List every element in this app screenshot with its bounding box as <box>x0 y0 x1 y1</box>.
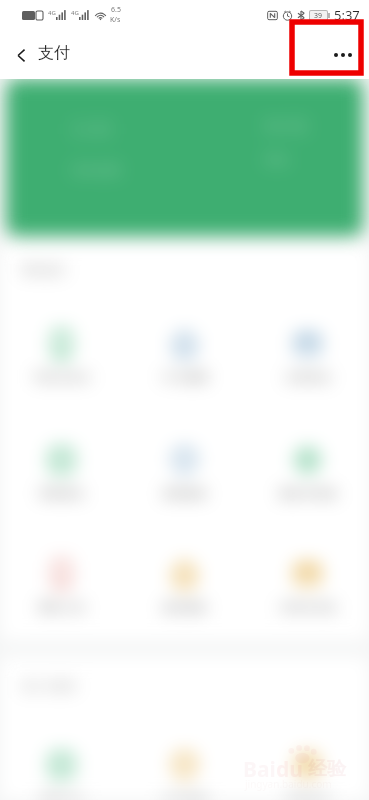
button[interactable]: Back <box>4 38 38 72</box>
staticText: 4G <box>48 9 56 17</box>
button[interactable]: 信用还款 <box>246 314 369 382</box>
button[interactable]: 理财通金 <box>0 430 123 498</box>
staticText: 城市服务 <box>162 601 208 612</box>
staticText: 4G <box>71 9 79 17</box>
staticText: 信用还款 <box>285 371 331 382</box>
staticText: 生活缴费 <box>162 371 208 382</box>
staticText: 5:37 <box>334 6 360 24</box>
button[interactable]: 微粒贷借钱 <box>246 430 369 498</box>
staticText: 理财通金 <box>39 487 85 498</box>
staticText: jingyan.baidu.com <box>245 777 332 791</box>
button[interactable]: 手机充值卡 <box>0 314 123 382</box>
button[interactable]: 信用卡还款 <box>246 544 369 612</box>
button[interactable]: 生活缴费 <box>123 314 246 382</box>
button[interactable]: 城市服务 <box>123 544 246 612</box>
button[interactable]: 美团外卖 <box>246 735 369 800</box>
staticText: du <box>276 755 303 784</box>
button[interactable]: 滴滴出行 <box>0 735 123 800</box>
staticText: 支付 <box>38 43 70 63</box>
button[interactable]: 保险服务 <box>123 430 246 498</box>
staticText: 经验 <box>303 755 346 781</box>
staticText: 6.5 <box>111 5 121 15</box>
button[interactable]: More options <box>321 33 365 77</box>
staticText: K/s <box>110 15 121 25</box>
staticText: Bai <box>243 755 276 784</box>
staticText: 39 <box>314 11 323 20</box>
staticText: 保险服务 <box>162 487 208 498</box>
button[interactable]: 腾讯公益 <box>0 544 123 612</box>
button[interactable]: 0.00 <box>6 79 363 236</box>
button[interactable]: 京东购物 <box>123 735 246 800</box>
